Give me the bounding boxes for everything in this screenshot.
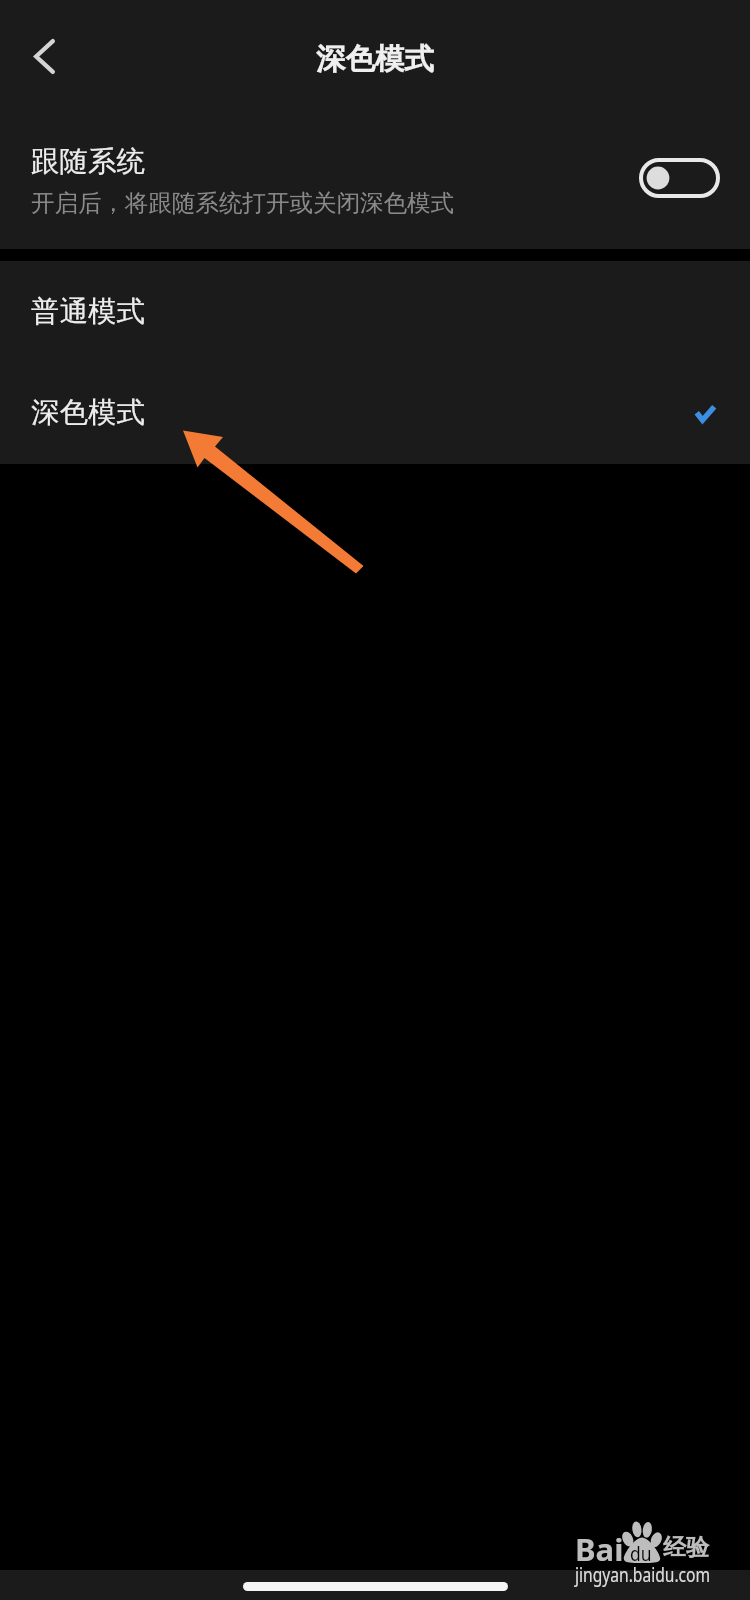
staticText: 跟随系统	[31, 144, 145, 180]
staticText: 深色模式	[31, 395, 697, 431]
staticText: Bai	[575, 1528, 624, 1570]
staticText: 深色模式	[316, 41, 434, 78]
staticText: 开启后，将跟随系统打开或关闭深色模式	[31, 188, 454, 218]
button[interactable]: 返回	[4, 16, 84, 96]
staticText: 普通模式	[31, 294, 720, 330]
button[interactable]: 跟随系统	[0, 112, 750, 249]
staticText: 经验	[663, 1533, 709, 1562]
staticText: jingyan.baidu.com	[575, 1561, 711, 1588]
staticText: du	[630, 1541, 652, 1567]
button[interactable]: 跟随系统开关	[639, 158, 720, 198]
button[interactable]: 普通模式	[0, 261, 750, 362]
button[interactable]: 深色模式	[0, 362, 750, 464]
